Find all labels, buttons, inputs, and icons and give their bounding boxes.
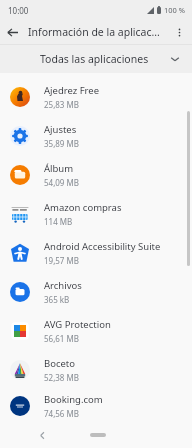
staticText: Ajustes [44,123,77,136]
staticText: 100 % [164,5,186,15]
button[interactable]: Back [32,425,52,445]
staticText: Boceto [44,357,76,370]
button[interactable]: Ajustes [0,116,192,155]
button[interactable]: Todas las aplicaciones [0,45,192,73]
staticText: 10:00 [8,5,29,16]
staticText: Android Accessibility Suite [44,240,161,253]
button[interactable]: Boceto [0,350,192,389]
staticText: 56,61 MB [44,333,79,344]
staticText: Todas las aplicaciones [40,52,149,66]
button[interactable]: Amazon compras [0,194,192,233]
staticText: Álbum [44,162,74,175]
staticText: 74,56 MB [44,408,79,419]
staticText: 35,89 MB [44,138,79,149]
staticText: 114 MB [44,216,73,227]
button[interactable]: Booking.com [0,389,192,422]
staticText: 365 kB [44,294,70,305]
button[interactable]: More options [168,21,190,43]
button[interactable]: Ajedrez Free [0,77,192,116]
staticText: 25,83 MB [44,99,79,110]
button[interactable]: Home [90,433,106,437]
button[interactable]: AVG Protection [0,311,192,350]
staticText: AVG Protection [44,318,111,331]
button[interactable]: Back [0,20,24,44]
staticText: Booking.com [44,393,103,406]
staticText: Archivos [44,279,82,292]
staticText: 52,38 MB [44,372,79,383]
button[interactable]: Android Accessibility Suite [0,233,192,272]
staticText: 54,09 MB [44,177,79,188]
staticText: Amazon compras [44,201,122,214]
button[interactable]: Archivos [0,272,192,311]
staticText: 19,57 MB [44,255,79,266]
staticText: Ajedrez Free [44,84,100,97]
staticText: Información de la aplicac… [28,25,168,39]
button[interactable]: Álbum [0,155,192,194]
